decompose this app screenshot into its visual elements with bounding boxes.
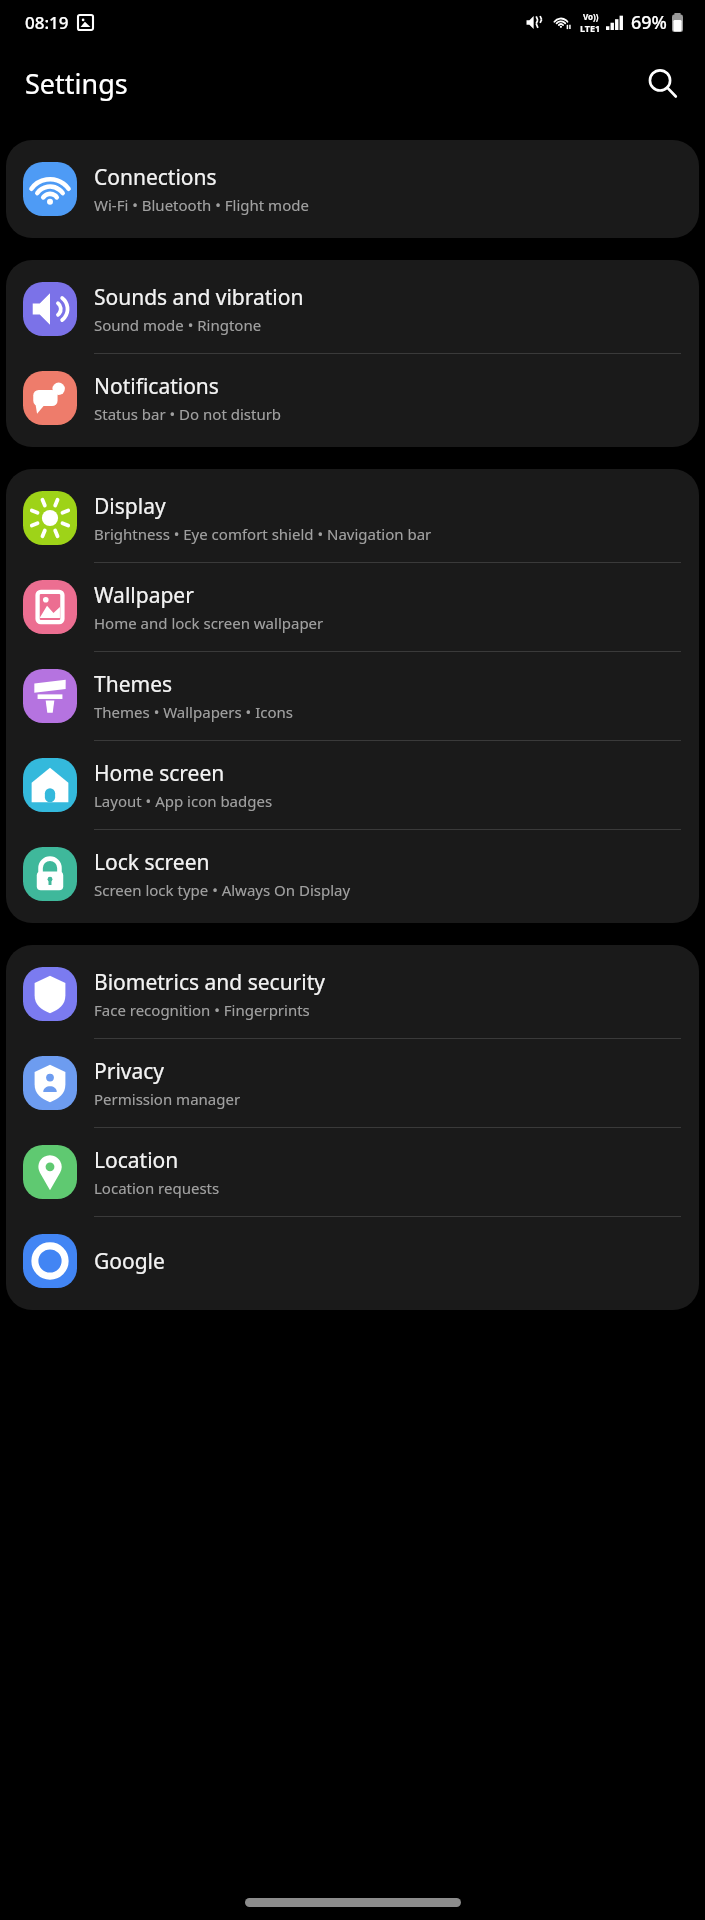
staticText: Permission manager xyxy=(94,1089,241,1109)
staticText: Home screen xyxy=(94,759,225,788)
button[interactable]: Home screen xyxy=(6,741,699,829)
staticText: Layout • App icon badges xyxy=(94,791,273,811)
button[interactable]: Sounds and vibration xyxy=(6,265,699,353)
button[interactable]: Connections xyxy=(6,145,699,233)
button[interactable]: Themes xyxy=(6,652,699,740)
staticText: Notifications xyxy=(94,372,219,401)
staticText: Biometrics and security xyxy=(94,968,325,997)
staticText: Wi-Fi • Bluetooth • Flight mode xyxy=(94,195,309,215)
staticText: Home and lock screen wallpaper xyxy=(94,613,324,633)
staticText: Display xyxy=(94,492,166,521)
staticText: Themes • Wallpapers • Icons xyxy=(94,702,293,722)
staticText: Sound mode • Ringtone xyxy=(94,315,262,335)
staticText: Lock screen xyxy=(94,848,210,877)
button[interactable]: Location xyxy=(6,1128,699,1216)
staticText: Face recognition • Fingerprints xyxy=(94,1000,310,1020)
staticText: Status bar • Do not disturb xyxy=(94,404,282,424)
staticText: Settings xyxy=(25,65,128,102)
staticText: 08:19 xyxy=(25,11,69,34)
staticText: Location xyxy=(94,1146,179,1175)
button[interactable]: Google xyxy=(6,1217,699,1305)
button[interactable]: Wallpaper xyxy=(6,563,699,651)
staticText: LTE1 xyxy=(580,22,601,34)
button[interactable]: Lock screen xyxy=(6,830,699,918)
staticText: Brightness • Eye comfort shield • Naviga… xyxy=(94,524,432,544)
staticText: Themes xyxy=(94,670,173,699)
staticText: Google xyxy=(94,1247,165,1276)
staticText: Location requests xyxy=(94,1178,220,1198)
staticText: Wallpaper xyxy=(94,581,194,610)
staticText: Connections xyxy=(94,163,217,192)
button[interactable]: Biometrics and security xyxy=(6,950,699,1038)
staticText: Sounds and vibration xyxy=(94,283,304,312)
button[interactable]: Privacy xyxy=(6,1039,699,1127)
button[interactable]: Notifications xyxy=(6,354,699,442)
staticText: 69% xyxy=(631,10,667,35)
staticText: Vo)) xyxy=(583,11,599,22)
staticText: Privacy xyxy=(94,1057,165,1086)
staticText: Screen lock type • Always On Display xyxy=(94,880,351,900)
button[interactable]: Search xyxy=(633,54,691,112)
button[interactable]: Display xyxy=(6,474,699,562)
